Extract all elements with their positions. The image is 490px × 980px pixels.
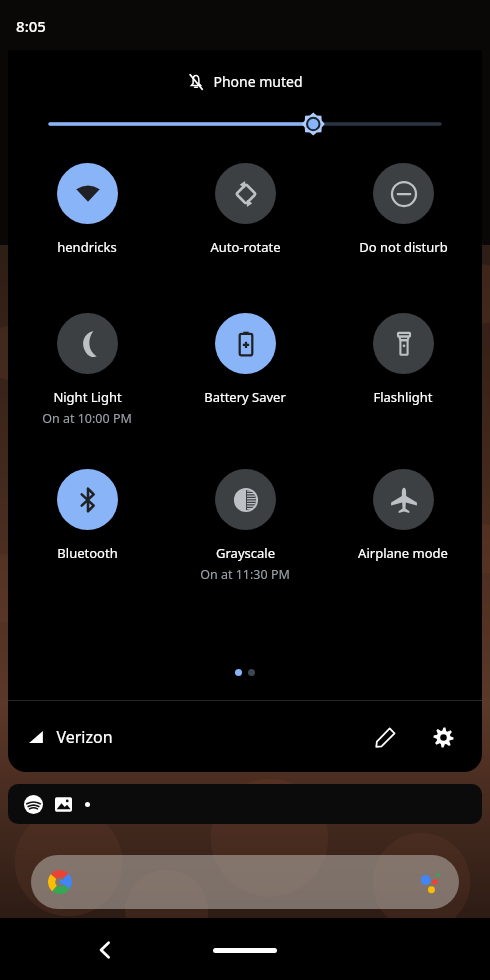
button[interactable]: Settings: [422, 716, 464, 758]
button[interactable]: Google search: [31, 855, 459, 909]
staticText: Grayscale: [216, 544, 275, 562]
button[interactable]: Do not disturb: [324, 163, 482, 256]
staticText: Battery Saver: [204, 388, 286, 406]
staticText: Night Light: [53, 388, 122, 406]
button[interactable]: Home: [213, 948, 277, 953]
staticText: Auto-rotate: [210, 238, 281, 256]
staticText: Verizon: [56, 726, 113, 748]
button[interactable]: Edit tiles: [364, 716, 406, 758]
staticText: Airplane mode: [358, 544, 448, 562]
button[interactable]: Grayscale: [166, 469, 324, 583]
button[interactable]: Verizon: [26, 716, 115, 758]
staticText: 8:05: [16, 16, 46, 36]
staticText: On at 11:30 PM: [200, 566, 290, 583]
staticText: Flashlight: [373, 388, 433, 406]
button[interactable]: Night Light: [8, 313, 166, 427]
button[interactable]: Auto-rotate: [166, 163, 324, 256]
staticText: hendricks: [57, 238, 117, 256]
button[interactable]: Battery Saver: [166, 313, 324, 406]
button[interactable]: Bluetooth: [8, 469, 166, 562]
button[interactable]: Airplane mode: [324, 469, 482, 562]
button[interactable]: Back: [83, 928, 127, 972]
staticText: On at 10:00 PM: [42, 410, 132, 427]
staticText: Bluetooth: [57, 544, 118, 562]
button[interactable]: Brightness: [50, 107, 440, 141]
button[interactable]: hendricks: [8, 163, 166, 256]
staticText: Do not disturb: [359, 238, 448, 256]
staticText: Phone muted: [213, 72, 303, 91]
button[interactable]: Flashlight: [324, 313, 482, 406]
button[interactable]: Notifications: [8, 784, 482, 824]
